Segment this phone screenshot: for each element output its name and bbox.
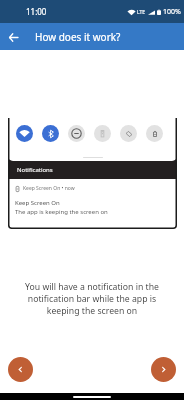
button[interactable]: Previous — [8, 357, 33, 382]
button[interactable]: Next — [151, 357, 176, 382]
staticText: Keep Screen On • now — [23, 185, 75, 192]
staticText: LTE — [137, 9, 146, 16]
staticText: Notifications — [17, 166, 53, 174]
button[interactable]: Bluetooth — [42, 125, 59, 142]
staticText: The app is keeping the screen on — [15, 208, 108, 216]
button[interactable]: Auto rotate — [120, 125, 137, 142]
staticText: Keep Screen On — [15, 199, 60, 207]
staticText: How does it work? — [35, 30, 121, 44]
button[interactable]: Wi-Fi — [16, 125, 33, 142]
button[interactable]: Battery saver — [146, 125, 163, 142]
button[interactable]: Do not disturb — [68, 125, 85, 142]
staticText: 100% — [163, 7, 181, 17]
staticText: 11:00 — [26, 6, 47, 17]
staticText: You will have a notification in the noti… — [19, 281, 165, 317]
button[interactable]: Back — [0, 24, 26, 50]
button[interactable]: Flashlight — [94, 125, 111, 142]
